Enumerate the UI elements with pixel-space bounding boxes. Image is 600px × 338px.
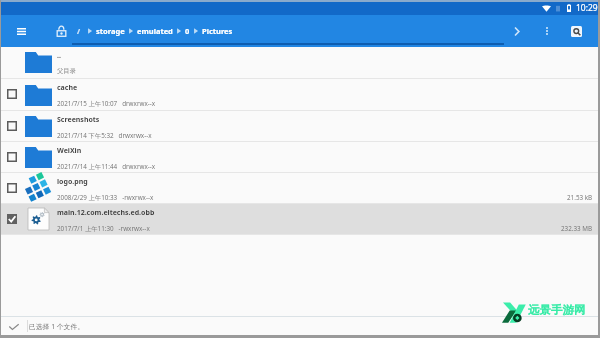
button[interactable]: Lock <box>55 15 67 47</box>
button[interactable]: 0 <box>183 26 192 36</box>
staticText: 21.53 kB <box>567 193 593 202</box>
staticText: 2021/7/15 上午10:07 drwxrwx--x <box>57 99 156 108</box>
staticText: 2021/7/14 下午5:32 drwxrwx--x <box>57 131 152 140</box>
staticText: 2008/2/29 上午10:33 -rwxrwx--x <box>57 193 154 202</box>
button[interactable]: cache <box>1 79 598 110</box>
button[interactable]: logo.png <box>1 173 598 203</box>
button[interactable]: WeiXin <box>1 142 598 172</box>
button[interactable]: Pictures <box>200 26 235 36</box>
staticText: 232.33 MB <box>561 224 593 233</box>
staticText: logo.png <box>57 177 88 187</box>
staticText: 远景手游网 <box>528 303 586 317</box>
button[interactable]: main.12.com.eltechs.ed.obb <box>1 204 598 234</box>
button[interactable]: Screenshots <box>1 111 598 141</box>
staticText: 父目录 <box>57 67 76 75</box>
staticText: 0 <box>185 26 190 36</box>
staticText: 已选择 1 个文件。 <box>29 322 85 331</box>
staticText: 2017/7/1 上午11:30 -rwxrwx--x <box>57 224 150 233</box>
staticText: storage <box>96 26 125 36</box>
button[interactable]: Search <box>564 15 588 47</box>
staticText: Screenshots <box>57 115 100 125</box>
staticText: main.12.com.eltechs.ed.obb <box>57 208 155 218</box>
button[interactable]: .. <box>1 47 598 78</box>
button[interactable]: storage <box>94 26 127 36</box>
staticText: emulated <box>137 26 173 36</box>
staticText: .. <box>57 51 61 61</box>
staticText: / <box>77 26 81 36</box>
staticText: WeiXin <box>57 146 82 156</box>
button[interactable]: Confirm selection <box>1 317 27 335</box>
staticText: Pictures <box>202 26 233 36</box>
button[interactable]: emulated <box>135 26 175 36</box>
button[interactable]: Forward <box>503 15 530 47</box>
button[interactable]: More options <box>534 15 560 47</box>
staticText: cache <box>57 83 78 93</box>
button[interactable]: Menu <box>11 15 31 47</box>
staticText: 2021/7/14 上午11:44 drwxrwx--x <box>57 162 156 171</box>
staticText: 10:29 <box>576 2 598 14</box>
